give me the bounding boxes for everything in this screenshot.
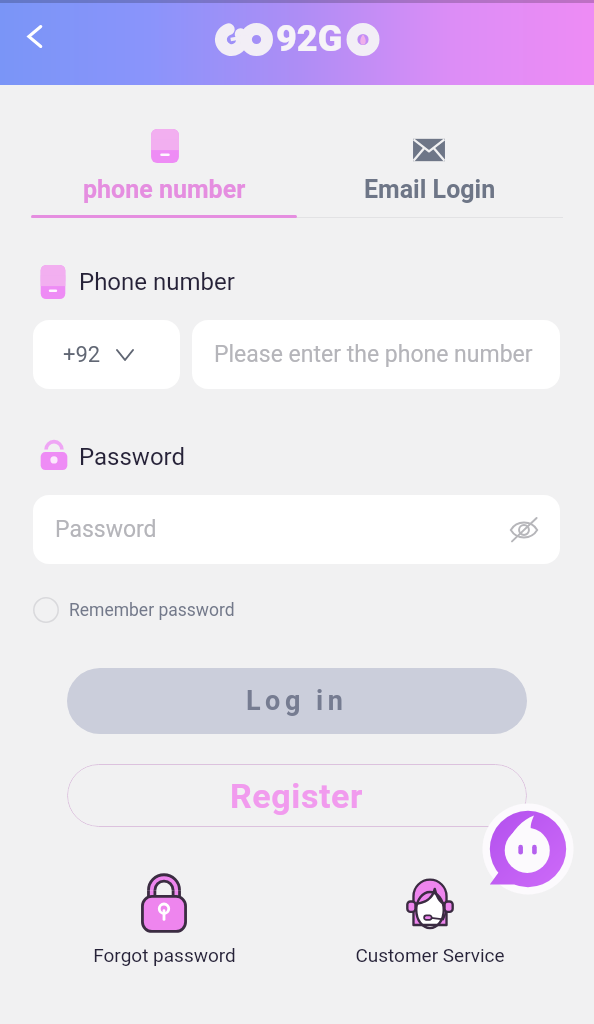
staticText: Password	[79, 443, 186, 471]
staticText: Email Login	[364, 175, 496, 204]
button[interactable]: +92	[33, 320, 180, 389]
staticText: 92G	[276, 18, 343, 60]
button[interactable]: Register	[67, 764, 527, 827]
staticText: Remember password	[69, 600, 235, 621]
staticText: Phone number	[79, 268, 235, 296]
staticText: Register	[230, 776, 364, 816]
staticText: Log in	[246, 685, 348, 717]
button[interactable]: Please enter the phone number	[192, 320, 560, 389]
button[interactable]: Show password	[507, 513, 541, 547]
staticText: Please enter the phone number	[214, 341, 533, 368]
button[interactable]: Chat support	[482, 803, 574, 895]
button[interactable]	[0, 100, 297, 220]
button[interactable]: Log in	[67, 668, 527, 734]
button[interactable]: Remember password	[33, 596, 235, 624]
staticText: +92	[63, 342, 101, 368]
button[interactable]: Password	[33, 495, 560, 564]
button[interactable]: Customer Service	[330, 876, 530, 966]
button[interactable]: Forgot password	[64, 876, 264, 966]
staticText: Forgot password	[93, 944, 236, 966]
staticText: phone number	[83, 175, 246, 204]
button[interactable]	[297, 100, 594, 220]
staticText: Customer Service	[355, 944, 505, 966]
button[interactable]: Back	[13, 15, 55, 57]
staticText: Password	[55, 516, 157, 543]
